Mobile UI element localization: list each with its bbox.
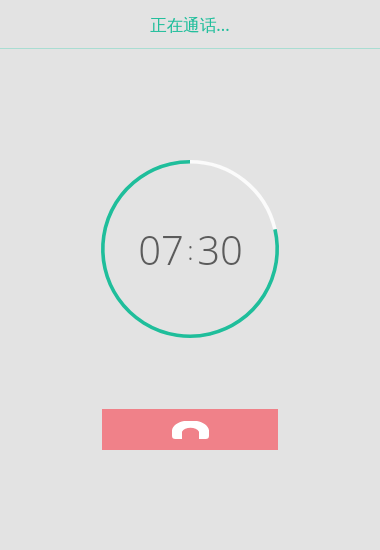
staticText: 30 — [197, 222, 243, 276]
staticText: : — [187, 232, 194, 267]
staticText: 07 — [138, 222, 184, 276]
button[interactable]: End call — [102, 409, 278, 450]
staticText: 正在通话... — [150, 13, 230, 36]
